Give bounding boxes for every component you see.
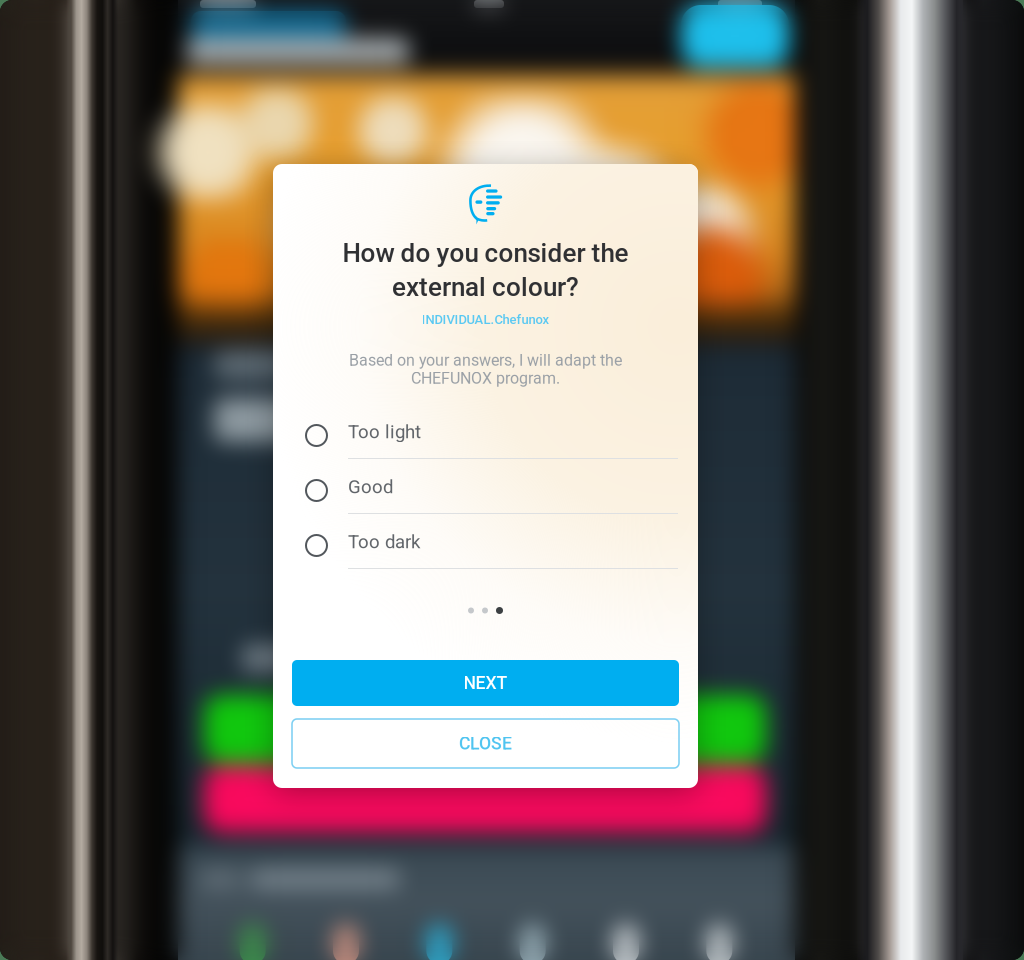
staticText: NEXT <box>463 673 507 693</box>
staticText: Too light <box>348 421 421 443</box>
staticText: How do you consider the <box>342 238 628 268</box>
staticText: Too dark <box>348 531 420 553</box>
staticText: CLOSE <box>459 733 512 754</box>
button[interactable]: NEXT <box>292 660 679 706</box>
button[interactable]: Good <box>273 467 698 522</box>
staticText: CHEFUNOX program. <box>411 369 560 388</box>
button[interactable]: Too light <box>273 412 698 467</box>
staticText: Based on your answers, I will adapt the <box>349 351 622 370</box>
button[interactable]: CLOSE <box>292 719 679 768</box>
staticText: Good <box>348 476 393 498</box>
staticText: external colour? <box>392 272 579 302</box>
button[interactable]: Too dark <box>273 522 698 577</box>
staticText: INDIVIDUAL.Chefunox <box>421 312 549 327</box>
